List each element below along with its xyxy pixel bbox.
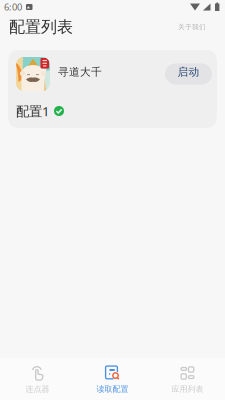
staticText: 启动 bbox=[177, 65, 199, 78]
button[interactable]: 连点器 bbox=[0, 358, 75, 400]
button[interactable]: 应用列表 bbox=[150, 358, 225, 400]
button[interactable]: 启动 bbox=[165, 63, 212, 84]
staticText: 6:00 bbox=[4, 1, 22, 13]
button[interactable]: 读取配置 bbox=[75, 358, 150, 400]
staticText: 寻道大千 bbox=[58, 65, 102, 78]
staticText: 连点器 bbox=[25, 384, 49, 394]
staticText: 关于我们 bbox=[178, 23, 206, 31]
staticText: 读取配置 bbox=[96, 384, 128, 394]
staticText: 应用列表 bbox=[171, 384, 203, 394]
staticText: 配置1 bbox=[16, 102, 50, 120]
staticText: 配置列表 bbox=[9, 17, 73, 37]
button[interactable]: 关于我们 bbox=[172, 18, 216, 36]
